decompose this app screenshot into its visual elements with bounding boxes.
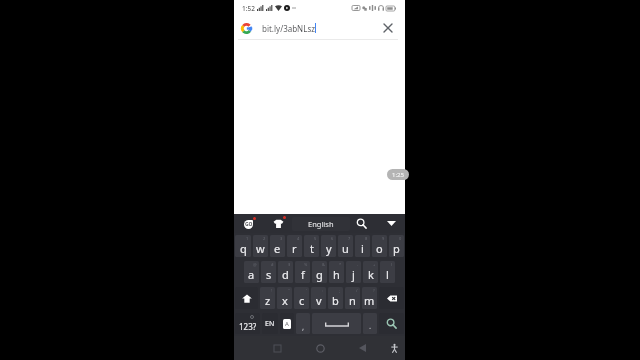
button[interactable]: m [362, 287, 377, 309]
button[interactable]: GO Keyboard menu [244, 217, 256, 229]
button[interactable]: Shift [235, 287, 258, 309]
button[interactable]: Backspace [379, 287, 404, 309]
button[interactable]: Search [354, 216, 369, 231]
staticText: x [282, 293, 288, 308]
staticText: : [322, 288, 324, 293]
button[interactable]: x [277, 287, 292, 309]
staticText: m [364, 293, 375, 308]
staticText: A [285, 320, 289, 328]
button[interactable]: u [338, 235, 353, 257]
button[interactable]: Language [262, 313, 278, 334]
staticText: bit.ly/3abNLsz [262, 23, 315, 34]
staticText: 4 [297, 236, 300, 241]
staticText: $ [288, 262, 291, 267]
staticText: GO [245, 221, 253, 228]
button[interactable]: English [292, 217, 350, 231]
staticText: EN [265, 319, 275, 329]
staticText: ; [339, 288, 341, 293]
button[interactable]: Recent apps [267, 338, 287, 358]
staticText: 5 [314, 236, 317, 241]
staticText: c [299, 293, 305, 308]
staticText: 0 [399, 236, 402, 241]
staticText: w [256, 241, 265, 256]
staticText: i [361, 241, 364, 256]
button[interactable]: q [235, 235, 251, 257]
button[interactable]: g [312, 261, 327, 283]
staticText: t [310, 241, 314, 256]
staticText: & [322, 262, 325, 267]
button[interactable]: Accessibility [384, 338, 404, 358]
button[interactable]: Back [352, 338, 372, 358]
staticText: , [302, 321, 305, 332]
button[interactable]: h [329, 261, 344, 283]
staticText: . [369, 320, 372, 331]
button[interactable]: n [345, 287, 360, 309]
staticText: / [356, 288, 358, 293]
staticText: e [274, 241, 281, 256]
button[interactable]: c [294, 287, 309, 309]
button[interactable]: l [380, 261, 395, 283]
staticText: y [326, 241, 332, 256]
button[interactable]: t [304, 235, 319, 257]
staticText: p [393, 241, 400, 256]
staticText: 3 [280, 236, 283, 241]
staticText: 8 [365, 236, 368, 241]
staticText: " [288, 288, 290, 293]
button[interactable]: i [355, 235, 370, 257]
button[interactable]: Clear text [379, 19, 397, 37]
button[interactable]: Comma [296, 313, 310, 334]
button[interactable]: p [389, 235, 404, 257]
staticText: h [333, 267, 340, 282]
button[interactable]: More options [384, 216, 399, 231]
staticText: ( [391, 262, 393, 267]
staticText: g [316, 267, 323, 282]
button[interactable]: v [311, 287, 326, 309]
button[interactable]: k [363, 261, 378, 283]
staticText: 1 [246, 236, 249, 241]
staticText: ! [271, 288, 273, 293]
button[interactable]: Search [379, 313, 404, 334]
staticText: n [349, 293, 356, 308]
button[interactable]: Themes [272, 217, 285, 230]
staticText: + [373, 262, 376, 267]
staticText: j [352, 267, 355, 282]
button[interactable]: z [260, 287, 275, 309]
button[interactable]: Space [312, 313, 361, 334]
staticText: f [301, 267, 305, 282]
button[interactable]: Period [363, 313, 377, 334]
button[interactable]: s [261, 261, 276, 283]
staticText: a [248, 267, 255, 282]
staticText: z [265, 293, 271, 308]
button[interactable]: o [372, 235, 387, 257]
staticText: l [386, 267, 389, 282]
staticText: 7 [348, 236, 351, 241]
staticText: * [339, 262, 342, 267]
staticText: 9 [382, 236, 385, 241]
staticText: d [282, 267, 289, 282]
staticText: o [376, 241, 383, 256]
button[interactable]: y [321, 235, 336, 257]
button[interactable]: r [287, 235, 302, 257]
button[interactable]: Emoji [280, 313, 294, 334]
button[interactable]: f [295, 261, 310, 283]
staticText: v [316, 293, 322, 308]
button[interactable]: e [270, 235, 285, 257]
button[interactable]: d [278, 261, 293, 283]
staticText: @ [253, 262, 257, 267]
staticText: # [271, 262, 274, 267]
button[interactable]: a [244, 261, 259, 283]
button[interactable]: j [346, 261, 361, 283]
staticText: English [308, 219, 334, 229]
staticText: u [342, 241, 349, 256]
staticText: ? [373, 288, 375, 293]
staticText: q [240, 241, 247, 256]
staticText: 6 [331, 236, 334, 241]
button[interactable]: w [253, 235, 268, 257]
button[interactable]: Home [310, 338, 330, 358]
staticText: s [266, 267, 272, 282]
staticText: k [368, 267, 374, 282]
button[interactable]: b [328, 287, 343, 309]
staticText: % [304, 262, 308, 267]
button[interactable]: Numbers and symbols [235, 313, 260, 334]
